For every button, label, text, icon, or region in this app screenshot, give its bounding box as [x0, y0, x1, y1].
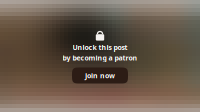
staticText: Unlock this post — [72, 43, 127, 52]
staticText: by becoming a patron — [62, 53, 137, 62]
staticText: Join now — [85, 71, 115, 80]
button[interactable]: Join now — [72, 67, 128, 83]
